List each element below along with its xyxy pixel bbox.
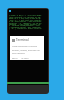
staticText: $ uname -a && ls -l /sys/class/power [9,14,42,16]
staticText: drwxr-xr-x 2 root root 0 2019-07-02 [9,17,41,19]
staticText: [ OK ] linking 247 object files ok [9,27,42,29]
staticText: Features : half thumb fastmult vfp [9,23,41,25]
staticText: processor : 0 BogoMIPS : 38.40 vfp [9,22,42,24]
staticText: DENY ALLOW [12,57,29,60]
staticText: Terminal [16,38,29,42]
staticText: Linux localhost 4.9.186-perf #1 SMP [9,16,41,18]
button[interactable]: Terminal [10,36,44,60]
staticText: $ ./gradlew assembleRelease --info [9,24,40,26]
staticText: > Configure project :app compiling [9,26,41,28]
staticText: $ cat /proc/cpuinfo | grep processor [9,20,42,22]
staticText: -rw-r--r-- 1 root root 8421 capacity [9,19,42,21]
staticText: Allow Terminal to access photos, media, … [12,45,42,54]
